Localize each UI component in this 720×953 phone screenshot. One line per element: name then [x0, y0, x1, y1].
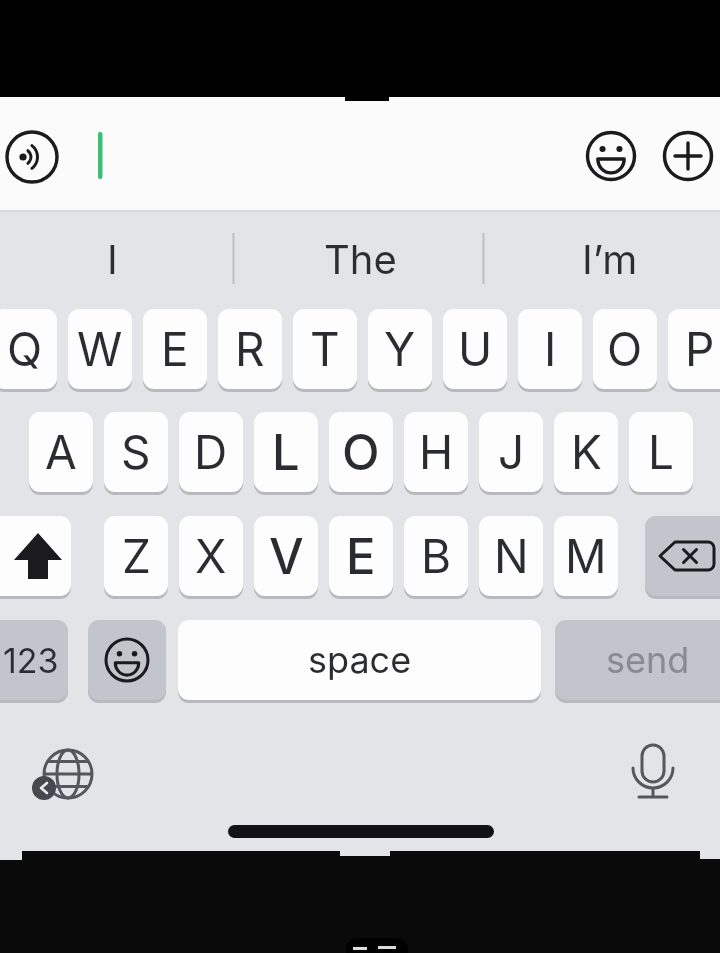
button[interactable]: I [40, 226, 184, 292]
staticText: J [498, 424, 525, 480]
staticText: R [235, 321, 265, 377]
button[interactable] [88, 620, 166, 700]
button[interactable]: L [254, 412, 318, 492]
staticText: Z [122, 528, 151, 584]
staticText: Y [384, 321, 416, 377]
button[interactable]: A [29, 412, 93, 492]
button[interactable]: T [293, 309, 357, 389]
button[interactable]: N [479, 516, 543, 596]
button[interactable]: I [518, 309, 582, 389]
staticText: S [121, 424, 151, 480]
staticText: L [272, 423, 300, 482]
staticText: O [607, 321, 643, 377]
staticText: 123 [3, 640, 59, 681]
staticText: W [77, 321, 123, 377]
button[interactable]: 123 [0, 620, 68, 700]
staticText: T [310, 321, 340, 377]
staticText: I [544, 321, 557, 377]
button[interactable]: E [143, 309, 207, 389]
button[interactable]: S [104, 412, 168, 492]
button[interactable]: B [404, 516, 468, 596]
button[interactable]: H [404, 412, 468, 492]
button[interactable]: I’m [538, 226, 682, 292]
staticText: I’m [582, 235, 638, 283]
staticText: E [346, 527, 376, 586]
button[interactable]: space [178, 620, 541, 700]
button[interactable]: E [329, 516, 393, 596]
button[interactable]: send [555, 620, 720, 700]
button[interactable]: Y [368, 309, 432, 389]
button[interactable]: D [179, 412, 243, 492]
staticText: send [606, 638, 690, 682]
staticText: X [195, 528, 227, 584]
staticText: K [571, 424, 602, 480]
staticText: The [324, 235, 397, 283]
button[interactable]: R [218, 309, 282, 389]
staticText: space [308, 638, 412, 682]
button[interactable]: O [593, 309, 657, 389]
staticText: I [107, 235, 118, 283]
staticText: P [685, 321, 715, 377]
button[interactable]: K [554, 412, 618, 492]
button[interactable]: L [629, 412, 693, 492]
button[interactable]: Z [104, 516, 168, 596]
button[interactable] [645, 516, 720, 596]
button[interactable]: X [179, 516, 243, 596]
staticText: B [421, 528, 452, 584]
button[interactable]: J [479, 412, 543, 492]
staticText: V [269, 527, 304, 586]
staticText: A [45, 424, 77, 480]
staticText: O [342, 423, 380, 482]
button[interactable]: The [288, 226, 432, 292]
staticText: N [494, 528, 529, 584]
button[interactable] [0, 97, 720, 210]
staticText: H [419, 424, 454, 480]
button[interactable]: W [68, 309, 132, 389]
button[interactable]: U [443, 309, 507, 389]
button[interactable]: O [329, 412, 393, 492]
staticText: U [458, 321, 493, 377]
staticText: E [161, 321, 189, 377]
button[interactable]: Q [0, 309, 57, 389]
staticText: Q [7, 321, 43, 377]
button[interactable]: M [554, 516, 618, 596]
staticText: D [194, 424, 228, 480]
button[interactable]: V [254, 516, 318, 596]
button[interactable]: P [668, 309, 720, 389]
button[interactable] [0, 516, 71, 596]
staticText: M [565, 528, 607, 584]
staticText: L [648, 424, 675, 480]
